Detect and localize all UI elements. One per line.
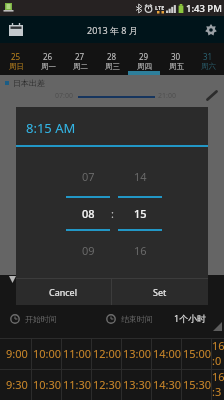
staticText: 2013 年 8 月 [87, 24, 138, 36]
staticText: 14:30 [153, 377, 182, 392]
button[interactable]: 30 [160, 43, 192, 75]
staticText: 09 [82, 243, 95, 258]
staticText: 11:30 [63, 377, 92, 392]
staticText: 30 [171, 51, 181, 62]
staticText: Cancel [49, 286, 78, 298]
staticText: 周日 [9, 62, 24, 71]
staticText: LTE [155, 4, 165, 11]
button[interactable]: Set [112, 279, 208, 305]
staticText: 周六 [201, 62, 216, 71]
button[interactable]: 28 [96, 43, 128, 75]
staticText: 15:00 [183, 346, 212, 361]
button[interactable]: 11:30 [62, 369, 92, 400]
button[interactable]: 29 [128, 43, 160, 75]
staticText: 1个小时 [174, 312, 207, 324]
staticText: 日本出差 [13, 78, 45, 88]
button[interactable]: 9:00 [2, 338, 32, 369]
staticText: 26 [43, 51, 53, 62]
staticText: 周一 [41, 62, 56, 71]
button[interactable]: 15:00 [182, 338, 212, 369]
staticText: 10:00 [33, 346, 62, 361]
button[interactable]: Cancel [16, 279, 111, 305]
button[interactable]: 14 [118, 165, 162, 187]
button[interactable]: 12:00 [92, 338, 122, 369]
button[interactable]: 07 [66, 165, 110, 187]
button[interactable]: 开始时间 [0, 305, 96, 333]
button[interactable]: 25 [0, 43, 32, 75]
staticText: 13:00 [123, 346, 152, 361]
button[interactable]: 13:00 [122, 338, 152, 369]
staticText: 21:00 [158, 91, 176, 101]
button[interactable]: 16:30 [212, 369, 224, 400]
staticText: 周五 [169, 62, 184, 71]
button[interactable]: 31 [192, 43, 224, 75]
staticText: 9:00 [6, 346, 28, 361]
button[interactable]: 10:00 [32, 338, 62, 369]
staticText: 28 [107, 51, 117, 62]
button[interactable]: 结束时间 [96, 305, 160, 333]
button[interactable]: 16:00 [212, 338, 224, 369]
button[interactable]: 16 [118, 239, 162, 261]
button[interactable]: 1个小时 [160, 305, 224, 333]
button[interactable]: Settings [198, 16, 224, 43]
staticText: : [111, 206, 114, 221]
staticText: 08 [82, 206, 95, 221]
staticText: 10:30 [33, 377, 62, 392]
staticText: 11:00 [63, 346, 92, 361]
button[interactable]: 14:30 [152, 369, 182, 400]
button[interactable]: Today [0, 16, 32, 43]
button[interactable]: 08 [66, 202, 110, 224]
button[interactable]: 10:30 [32, 369, 62, 400]
staticText: 12:00 [93, 346, 122, 361]
staticText: 16 [134, 243, 147, 258]
staticText: 13:30 [123, 377, 152, 392]
staticText: 9:30 [6, 377, 28, 392]
button[interactable]: 9:30 [2, 369, 32, 400]
button[interactable]: 11:00 [62, 338, 92, 369]
staticText: 14 [134, 169, 147, 184]
staticText: 周三 [105, 62, 120, 71]
staticText: 周二 [73, 62, 88, 71]
staticText: 1:43 PM [186, 2, 222, 15]
staticText: 16:00 [212, 338, 224, 369]
staticText: 31 [203, 51, 213, 62]
staticText: 25 [11, 51, 21, 62]
button[interactable]: 26 [32, 43, 64, 75]
button[interactable]: 27 [64, 43, 96, 75]
staticText: 12:30 [93, 377, 122, 392]
button[interactable]: 15 [118, 202, 162, 224]
button[interactable]: 14:00 [152, 338, 182, 369]
staticText: 27 [75, 51, 85, 62]
staticText: 07 [82, 169, 95, 184]
staticText: 周四 [137, 62, 152, 71]
staticText: 16:30 [212, 369, 224, 400]
staticText: 8:15 AM [26, 119, 76, 137]
staticText: Set [153, 286, 167, 298]
button[interactable]: 13:30 [122, 369, 152, 400]
button[interactable]: 09 [66, 239, 110, 261]
staticText: 14:00 [153, 346, 182, 361]
staticText: 15 [134, 206, 147, 221]
staticText: 07:00 [55, 91, 73, 101]
staticText: 29 [139, 51, 149, 62]
button[interactable]: 日本出差 [0, 76, 224, 89]
staticText: 结束时间 [121, 314, 153, 324]
staticText: 开始时间 [25, 314, 57, 324]
staticText: 15:30 [183, 377, 212, 392]
button[interactable]: 15:30 [182, 369, 212, 400]
button[interactable]: Edit event [200, 89, 224, 102]
button[interactable]: 12:30 [92, 369, 122, 400]
